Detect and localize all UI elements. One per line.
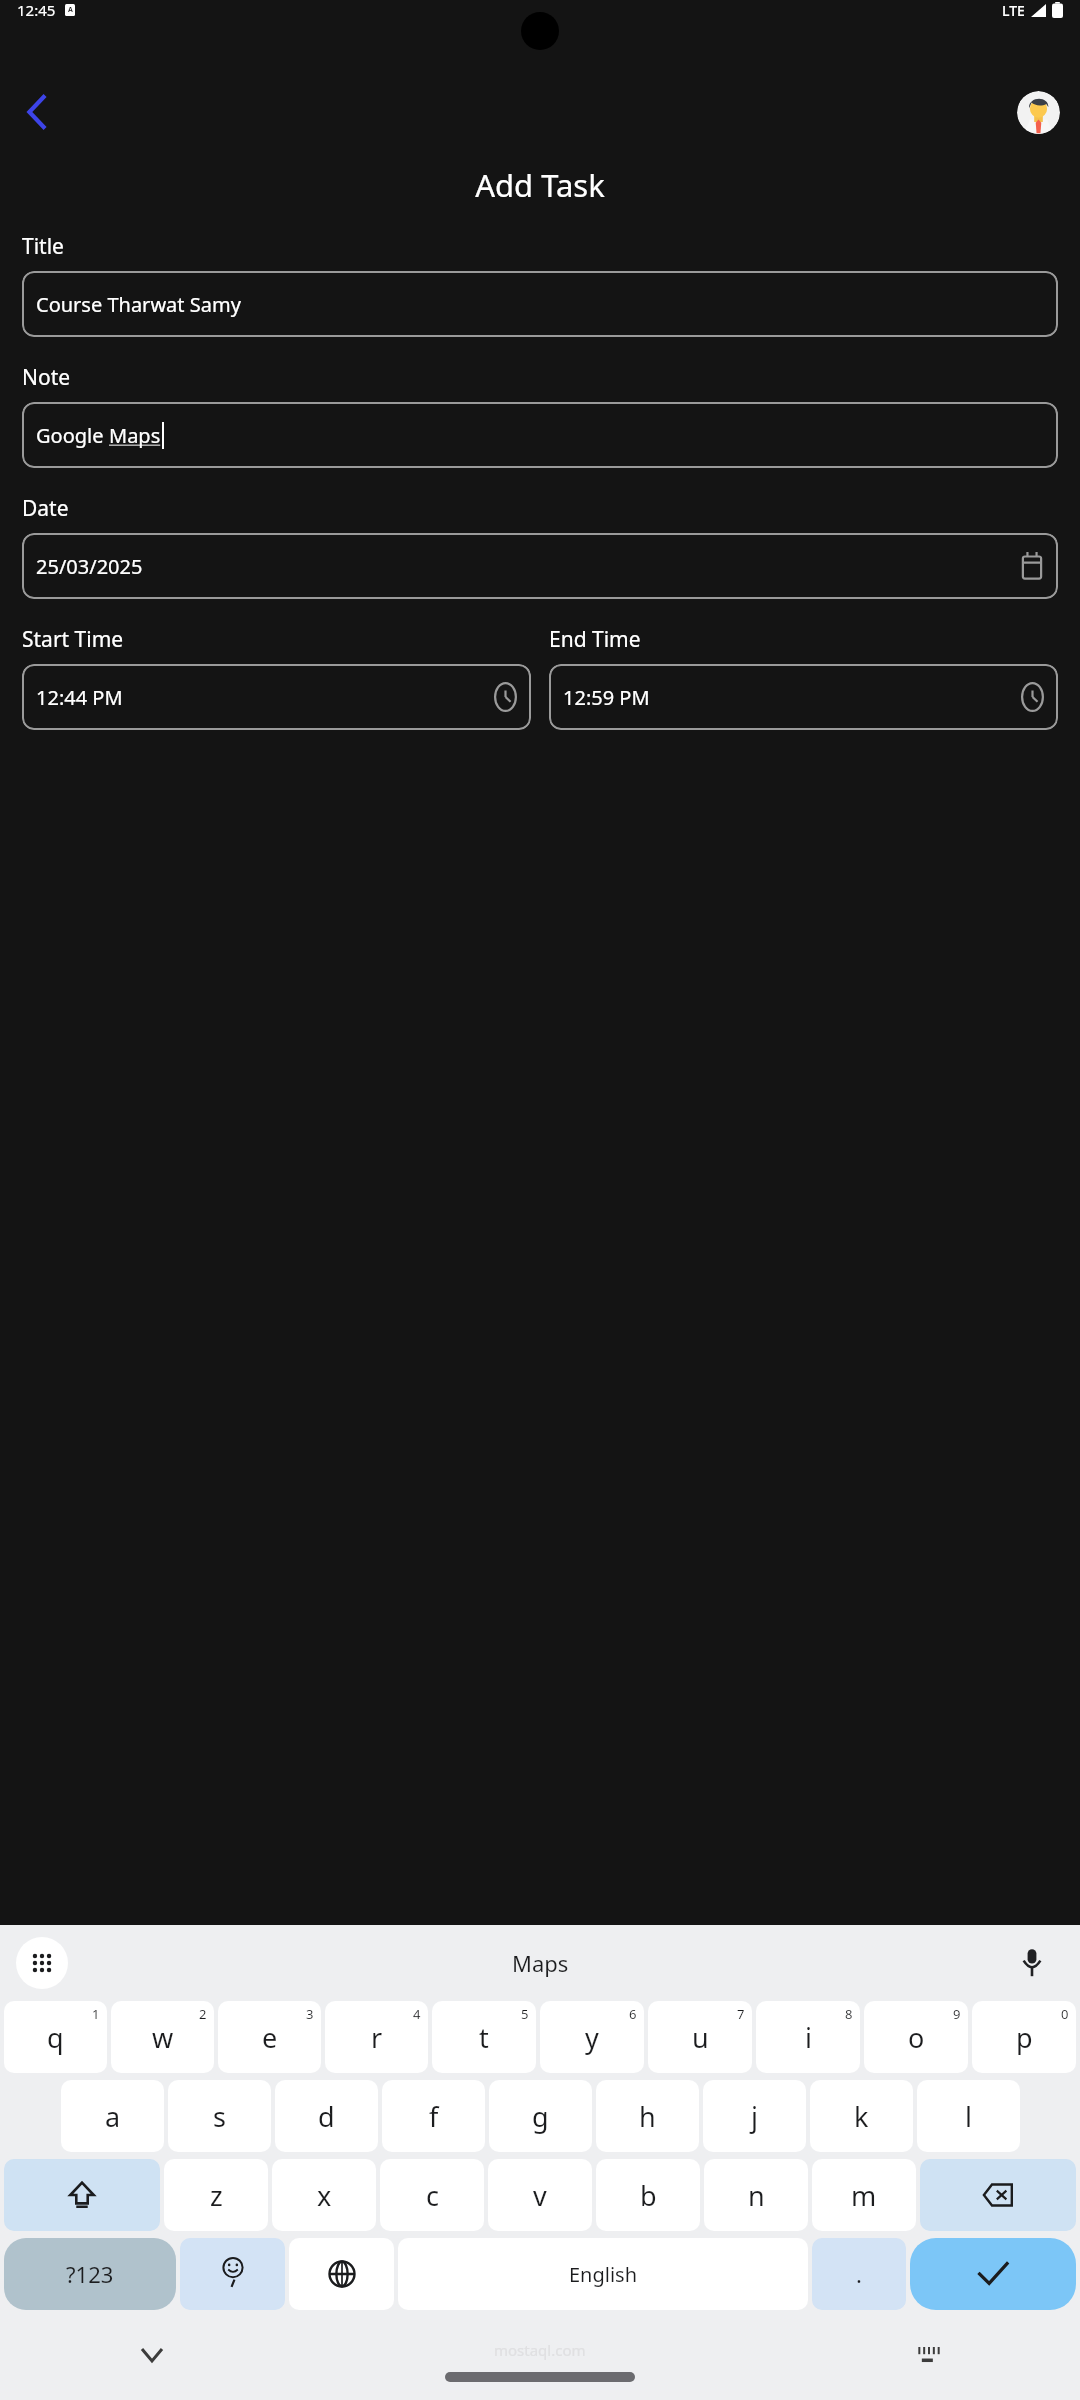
button[interactable]: x bbox=[272, 2159, 376, 2231]
staticText: k bbox=[854, 2098, 869, 2135]
staticText: w bbox=[152, 2019, 174, 2056]
staticText: i bbox=[805, 2019, 812, 2056]
staticText: . bbox=[856, 2259, 862, 2289]
button[interactable]: t bbox=[432, 2001, 536, 2073]
button[interactable]: n bbox=[704, 2159, 808, 2231]
button[interactable]: v bbox=[488, 2159, 592, 2231]
staticText: o bbox=[908, 2019, 925, 2056]
staticText: LTE bbox=[1002, 1, 1025, 20]
staticText: l bbox=[965, 2098, 972, 2135]
button[interactable]: m bbox=[812, 2159, 916, 2231]
staticText: z bbox=[210, 2177, 223, 2214]
staticText: Google bbox=[36, 422, 109, 449]
staticText: n bbox=[748, 2177, 765, 2214]
staticText: g bbox=[532, 2098, 549, 2135]
staticText: t bbox=[479, 2019, 489, 2056]
staticText: b bbox=[640, 2177, 657, 2214]
staticText: Title bbox=[22, 232, 64, 261]
staticText: End Time bbox=[549, 625, 641, 654]
staticText: 25/03/2025 bbox=[36, 553, 143, 580]
button[interactable]: p bbox=[972, 2001, 1076, 2073]
button[interactable]: a bbox=[61, 2080, 164, 2152]
staticText: q bbox=[47, 2019, 64, 2056]
button[interactable]: Voice input bbox=[1010, 1941, 1054, 1985]
button[interactable]: r bbox=[325, 2001, 428, 2073]
staticText: English bbox=[569, 2261, 638, 2288]
staticText: Date bbox=[22, 494, 69, 523]
staticText: Note bbox=[22, 363, 71, 392]
staticText: Maps bbox=[109, 422, 161, 449]
button[interactable]: Change language bbox=[289, 2238, 394, 2310]
staticText: a bbox=[105, 2098, 121, 2135]
staticText: 0 bbox=[1061, 2005, 1069, 2023]
button[interactable]: Hide keyboard bbox=[130, 2333, 174, 2377]
staticText: 12:44 PM bbox=[36, 684, 123, 711]
staticText: Start Time bbox=[22, 625, 124, 654]
staticText: f bbox=[429, 2098, 439, 2135]
button[interactable]: d bbox=[275, 2080, 378, 2152]
staticText: 4 bbox=[413, 2005, 421, 2023]
staticText: j bbox=[751, 2098, 758, 2135]
button[interactable]: c bbox=[380, 2159, 484, 2231]
button[interactable]: j bbox=[703, 2080, 806, 2152]
staticText: A bbox=[68, 5, 73, 15]
staticText: 8 bbox=[845, 2005, 853, 2023]
staticText: 9 bbox=[953, 2005, 961, 2023]
button[interactable]: z bbox=[164, 2159, 268, 2231]
staticText: 12:59 PM bbox=[563, 684, 650, 711]
staticText: u bbox=[692, 2019, 709, 2056]
button[interactable]: k bbox=[810, 2080, 913, 2152]
staticText: e bbox=[262, 2019, 278, 2056]
button[interactable]: Back bbox=[10, 86, 62, 138]
staticText: d bbox=[318, 2098, 335, 2135]
button[interactable]: 12:59 PM bbox=[549, 664, 1058, 730]
button[interactable]: Emoji bbox=[180, 2238, 285, 2310]
button[interactable]: e bbox=[218, 2001, 321, 2073]
button[interactable]: f bbox=[382, 2080, 485, 2152]
button[interactable]: g bbox=[489, 2080, 592, 2152]
staticText: 5 bbox=[521, 2005, 529, 2023]
button[interactable]: Keyboard settings bbox=[906, 2333, 950, 2377]
button[interactable]: h bbox=[596, 2080, 699, 2152]
staticText: 6 bbox=[629, 2005, 637, 2023]
staticText: Add Task bbox=[475, 164, 605, 206]
staticText: 2 bbox=[199, 2005, 207, 2023]
button[interactable]: w bbox=[111, 2001, 214, 2073]
button[interactable]: s bbox=[168, 2080, 271, 2152]
button[interactable]: . bbox=[812, 2238, 906, 2310]
staticText: 1 bbox=[92, 2005, 100, 2023]
button[interactable]: Profile bbox=[1017, 91, 1060, 134]
staticText: 12:45 bbox=[17, 0, 56, 20]
staticText: c bbox=[426, 2177, 439, 2214]
staticText: r bbox=[371, 2019, 383, 2056]
staticText: mostaql.com bbox=[494, 2340, 586, 2360]
staticText: h bbox=[639, 2098, 656, 2135]
staticText: y bbox=[585, 2019, 599, 2056]
button[interactable]: u bbox=[648, 2001, 752, 2073]
button[interactable]: Course Tharwat Samy bbox=[22, 271, 1058, 337]
staticText: ?123 bbox=[66, 2259, 114, 2289]
button[interactable]: l bbox=[917, 2080, 1020, 2152]
button[interactable]: i bbox=[756, 2001, 860, 2073]
staticText: 7 bbox=[737, 2005, 745, 2023]
staticText: p bbox=[1016, 2019, 1033, 2056]
button[interactable]: Done bbox=[910, 2238, 1076, 2310]
button[interactable]: Shift bbox=[4, 2159, 160, 2231]
button[interactable]: y bbox=[540, 2001, 644, 2073]
staticText: x bbox=[317, 2177, 332, 2214]
button[interactable]: English bbox=[398, 2238, 808, 2310]
button[interactable]: 12:44 PM bbox=[22, 664, 531, 730]
staticText: v bbox=[533, 2177, 547, 2214]
staticText: m bbox=[851, 2177, 877, 2214]
button[interactable]: 25/03/2025 bbox=[22, 533, 1058, 599]
button[interactable]: Google bbox=[22, 402, 1058, 468]
button[interactable]: Backspace bbox=[920, 2159, 1076, 2231]
staticText: s bbox=[213, 2098, 226, 2135]
button[interactable]: b bbox=[596, 2159, 700, 2231]
button[interactable]: o bbox=[864, 2001, 968, 2073]
button[interactable]: Maps bbox=[512, 1948, 569, 1978]
button[interactable]: q bbox=[4, 2001, 107, 2073]
staticText: Course Tharwat Samy bbox=[36, 291, 241, 318]
button[interactable]: ?123 bbox=[4, 2238, 176, 2310]
button[interactable]: More options bbox=[16, 1937, 68, 1989]
